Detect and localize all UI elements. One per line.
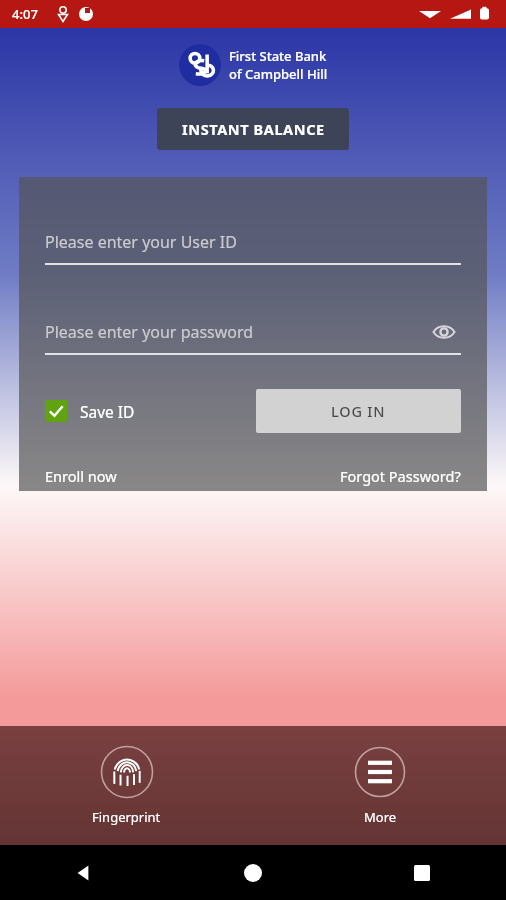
staticText: Enroll now <box>45 466 117 486</box>
button[interactable]: Recent apps <box>337 845 506 900</box>
staticText: Save ID <box>80 401 135 422</box>
staticText: Please enter your User ID <box>45 231 237 253</box>
button[interactable]: INSTANT BALANCE <box>157 108 349 150</box>
staticText: First State Bank <box>229 47 327 65</box>
staticText: INSTANT BALANCE <box>182 119 325 139</box>
staticText: LOG IN <box>331 401 386 421</box>
button[interactable]: Home <box>168 845 337 900</box>
button[interactable]: Show password <box>427 315 461 349</box>
staticText: Fingerprint <box>92 808 161 826</box>
button[interactable]: Fingerprint login <box>74 739 179 832</box>
staticText: More <box>364 808 397 826</box>
other: Fingerprint login <box>100 745 154 799</box>
staticText: of Campbell Hill <box>229 65 328 83</box>
button[interactable]: Please enter your User ID <box>45 221 461 263</box>
button[interactable]: Save ID <box>45 400 135 422</box>
button[interactable]: Forgot Password? <box>340 462 461 490</box>
button[interactable]: Please enter your password <box>45 311 461 353</box>
staticText: Please enter your password <box>45 321 254 343</box>
other: More options <box>353 745 407 799</box>
button[interactable]: Back <box>0 845 168 900</box>
button[interactable]: More options <box>335 739 425 832</box>
button[interactable]: LOG IN <box>256 389 461 433</box>
button[interactable]: Enroll now <box>45 462 117 490</box>
staticText: Forgot Password? <box>340 466 461 486</box>
staticText: 4:07 <box>12 5 38 23</box>
